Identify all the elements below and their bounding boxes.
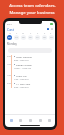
button[interactable]: 9:00 <box>7 55 53 63</box>
staticText: 9:00 <box>7 55 11 58</box>
button[interactable]: 3:00 <box>7 82 53 90</box>
staticText: Client call <box>16 74 27 77</box>
staticText: 10:00 - 11:00 AM <box>14 67 31 70</box>
staticText: 9:00 - 9:30 AM <box>14 59 29 62</box>
staticText: Monday <box>7 42 17 46</box>
button[interactable]: T <box>27 32 34 40</box>
staticText: 1:00 <box>7 74 11 77</box>
staticText: 13 <box>8 36 11 39</box>
staticText: 19 <box>50 36 53 39</box>
staticText: T <box>30 32 32 35</box>
button[interactable]: W <box>20 32 27 40</box>
staticText: Team standup <box>16 55 32 58</box>
button[interactable]: 10:0 <box>7 63 53 71</box>
button[interactable]: S <box>41 32 48 40</box>
staticText: 15 <box>22 36 25 39</box>
button[interactable]: Tab 3 <box>26 116 34 124</box>
button[interactable]: 1:00 <box>7 74 53 82</box>
staticText: Cast <box>7 27 14 32</box>
staticText: Access team calendars. <box>9 3 56 9</box>
staticText: 10:0 <box>7 63 11 66</box>
staticText: T <box>16 32 18 35</box>
staticText: Design review <box>16 63 32 66</box>
staticText: W <box>22 32 25 35</box>
staticText: S <box>50 32 52 35</box>
button[interactable]: S <box>48 32 54 40</box>
button[interactable]: Tab 4 <box>36 116 44 124</box>
staticText: 14 <box>15 36 18 39</box>
staticText: S <box>44 32 46 35</box>
button[interactable]: Tab 1 <box>7 116 15 124</box>
button[interactable]: F <box>34 32 41 40</box>
staticText: 18 <box>43 36 46 39</box>
staticText: 1:1 with Sam <box>16 82 31 85</box>
button[interactable]: T <box>13 32 20 40</box>
button[interactable]: Tab 2 <box>16 116 24 124</box>
staticText: 17 <box>36 36 39 39</box>
button[interactable]: M <box>6 32 13 40</box>
staticText: F <box>37 32 39 35</box>
staticText: 3:00 <box>7 82 11 85</box>
staticText: 3:00 - 3:30 PM <box>14 86 29 89</box>
staticText: 9:41 <box>7 22 12 25</box>
staticText: M <box>9 32 11 35</box>
button[interactable]: Tab 5 <box>45 116 53 124</box>
staticText: Manage your business <box>9 10 55 16</box>
staticText: 16 <box>29 36 32 39</box>
staticText: 1:00 - 2:00 PM <box>14 78 29 81</box>
